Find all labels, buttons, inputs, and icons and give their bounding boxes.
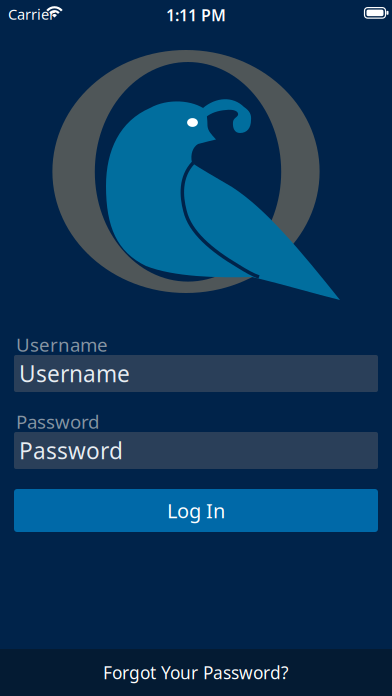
staticText: Username	[16, 332, 108, 357]
staticText: Carrier	[8, 4, 55, 24]
button[interactable]: Log In	[14, 489, 378, 532]
staticText: Log In	[167, 497, 225, 524]
staticText: Username	[19, 358, 130, 388]
staticText: 1:11 PM	[166, 4, 226, 26]
staticText: Forgot Your Password?	[103, 661, 289, 684]
button[interactable]: Forgot Your Password?	[0, 649, 392, 696]
staticText: Password	[19, 435, 123, 465]
staticText: Password	[16, 409, 99, 434]
